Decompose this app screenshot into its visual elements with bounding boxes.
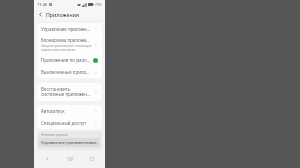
staticText: Управление приложениями xyxy=(41,26,92,32)
button[interactable]: Управление приложениями xyxy=(37,23,102,35)
staticText: 11:46 xyxy=(37,2,48,7)
button[interactable]: Главный экран xyxy=(61,150,79,168)
staticText: 79% xyxy=(95,2,102,7)
staticText: Автозапуск xyxy=(41,108,65,114)
staticText: Защита приложений с помощью пароля или о… xyxy=(41,44,92,52)
staticText: Блокировка приложений xyxy=(41,37,92,43)
staticText: Управление приложениями xyxy=(41,140,97,145)
button[interactable]: Последние приложения xyxy=(83,150,101,168)
staticText: Специальный доступ xyxy=(41,120,86,126)
button[interactable]: Блокировка приложений xyxy=(37,35,102,54)
staticText: Выключенные приложения xyxy=(41,69,92,75)
button[interactable]: Восстановить системные приложения xyxy=(37,83,102,101)
button[interactable]: Автозапуск xyxy=(37,105,102,117)
staticText: Название раздела xyxy=(41,133,68,137)
button[interactable]: Выключенные приложения xyxy=(37,66,102,78)
staticText: Восстановить системные приложения xyxy=(41,86,92,98)
button[interactable]: Специальный доступ xyxy=(37,117,102,129)
button[interactable]: Назад xyxy=(38,150,56,168)
button[interactable]: Назад xyxy=(34,8,46,20)
staticText: Приложения по умолчанию xyxy=(41,57,91,63)
staticText: Приложения xyxy=(46,11,79,18)
button[interactable]: Управление приложениями xyxy=(39,138,100,147)
button[interactable]: Приложения по умолчанию xyxy=(37,54,102,66)
